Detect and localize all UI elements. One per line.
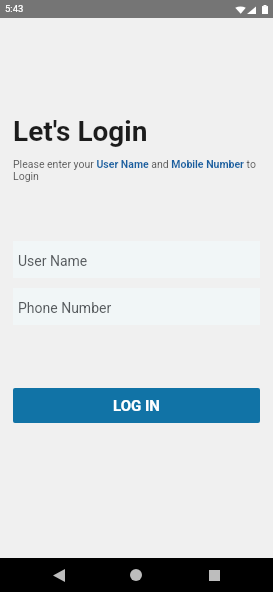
- staticText: 5:43: [5, 3, 24, 14]
- staticText: User Name: [18, 253, 88, 269]
- staticText: Phone Number: [18, 300, 112, 316]
- button[interactable]: Phone Number: [13, 288, 260, 325]
- button[interactable]: Home: [97, 558, 175, 592]
- button[interactable]: LOG IN: [13, 388, 260, 423]
- button[interactable]: Recents: [175, 558, 253, 592]
- button[interactable]: Back: [20, 558, 97, 592]
- button[interactable]: User Name: [13, 241, 260, 278]
- staticText: Let's Login: [13, 115, 148, 148]
- staticText: Please enter your User Name and Mobile N…: [13, 158, 260, 182]
- staticText: LOG IN: [113, 397, 160, 415]
